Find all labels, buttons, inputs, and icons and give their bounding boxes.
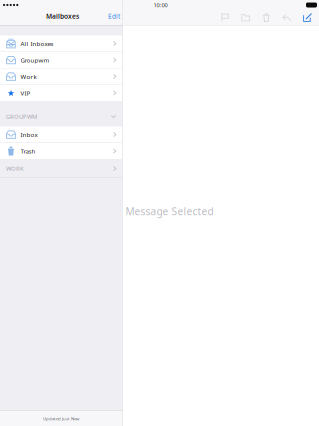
staticText: Groupwm <box>20 56 49 64</box>
staticText: Updated Just Now <box>43 416 79 421</box>
staticText: 10:00 <box>154 1 168 9</box>
button[interactable]: Work <box>0 68 122 85</box>
button[interactable]: Edit <box>103 9 122 24</box>
button[interactable]: Reply <box>281 11 292 23</box>
button[interactable]: Compose <box>302 11 313 23</box>
button[interactable]: Delete <box>261 11 272 23</box>
button[interactable]: GROUPWM <box>0 101 122 126</box>
button[interactable]: Inbox <box>0 126 122 143</box>
staticText: Message Selected <box>126 204 214 218</box>
button[interactable]: Groupwm <box>0 52 122 68</box>
staticText: Mailboxes <box>46 12 79 21</box>
button[interactable]: VIP <box>0 85 122 101</box>
button[interactable]: Flag <box>220 11 231 23</box>
staticText: WORK <box>6 164 24 172</box>
button[interactable]: Trash <box>0 143 122 159</box>
staticText: All Inboxes <box>20 39 53 48</box>
staticText: GROUPWM <box>6 112 37 120</box>
button[interactable]: Move to folder <box>240 11 251 23</box>
staticText: Work <box>20 72 36 81</box>
staticText: VIP <box>20 89 30 97</box>
staticText: Inbox <box>20 130 37 139</box>
staticText: Trash <box>20 147 35 155</box>
button[interactable]: WORK <box>0 159 122 177</box>
button[interactable]: All Inboxes <box>0 35 122 52</box>
staticText: Edit <box>108 12 120 21</box>
